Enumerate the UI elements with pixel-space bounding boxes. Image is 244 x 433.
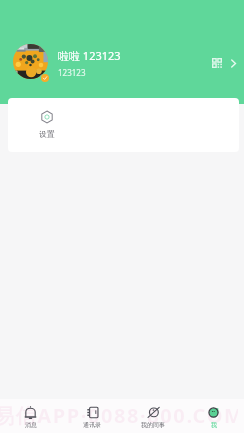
button[interactable]: 啦啦 123123 (0, 17, 244, 105)
button[interactable]: Profile details (225, 55, 241, 71)
button[interactable]: My QR code (208, 54, 226, 72)
staticText: 我的同事 (141, 421, 165, 429)
button[interactable]: 我的同事 (122, 399, 183, 422)
staticText: 通讯录 (83, 421, 101, 429)
button[interactable]: 通讯录 (61, 399, 122, 422)
staticText: 易信APP·0088·800.COM (0, 402, 238, 429)
button[interactable]: 我 (183, 399, 244, 422)
button[interactable]: 消息 (0, 399, 61, 422)
staticText: 设置 (39, 129, 55, 139)
staticText: 123123 (58, 67, 86, 78)
button[interactable]: 设置 (8, 98, 85, 152)
staticText: 啦啦 123123 (58, 48, 121, 63)
staticText: 我 (211, 421, 217, 429)
staticText: 消息 (25, 421, 37, 429)
